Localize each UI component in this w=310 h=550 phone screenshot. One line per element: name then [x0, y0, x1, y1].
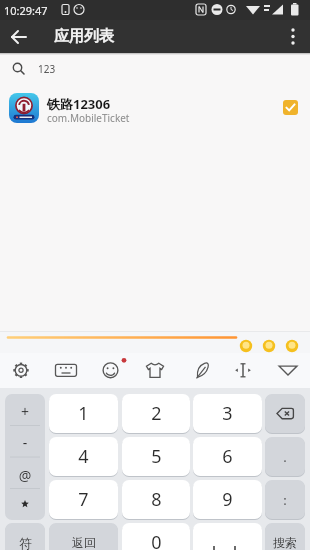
button[interactable]: 5	[122, 437, 190, 476]
staticText: :	[283, 491, 287, 509]
staticText: 搜索	[273, 535, 297, 550]
button[interactable]	[193, 523, 262, 550]
button[interactable]	[283, 100, 298, 115]
staticText: .	[283, 448, 287, 466]
button[interactable]: 8	[122, 480, 190, 519]
button[interactable]: 1	[49, 394, 118, 433]
button[interactable]	[284, 338, 301, 355]
button[interactable]	[282, 23, 304, 51]
staticText: 3	[222, 401, 233, 426]
button[interactable]: .	[265, 437, 305, 476]
button[interactable]: 符	[5, 523, 45, 550]
staticText: 符	[19, 535, 32, 550]
staticText: 9	[222, 487, 233, 512]
button[interactable]: 0	[122, 523, 190, 550]
staticText: 8	[151, 487, 162, 512]
button[interactable]	[183, 355, 217, 386]
button[interactable]: 搜索	[265, 523, 305, 550]
button[interactable]: :	[265, 480, 305, 519]
staticText: com.MobileTicket	[47, 111, 207, 125]
button[interactable]	[0, 88, 310, 128]
button[interactable]	[272, 355, 306, 386]
button[interactable]	[49, 355, 83, 386]
button[interactable]: 6	[193, 437, 262, 476]
button[interactable]: 4	[49, 437, 118, 476]
button[interactable]	[4, 355, 38, 386]
staticText: 123	[38, 62, 98, 76]
button[interactable]	[0, 57, 310, 83]
staticText: 2	[151, 401, 162, 426]
staticText: 1	[78, 401, 89, 426]
staticText: 5	[151, 444, 162, 469]
staticText: 应用列表	[54, 27, 174, 46]
staticText: 返回	[72, 535, 96, 550]
staticText: -	[5, 433, 45, 452]
button[interactable]	[228, 355, 262, 386]
button[interactable]	[5, 394, 45, 520]
staticText: 7	[78, 487, 89, 512]
button[interactable]	[93, 355, 127, 386]
staticText: 4	[78, 444, 89, 469]
button[interactable]: 3	[193, 394, 262, 433]
staticText: 铁路12306	[47, 95, 187, 113]
button[interactable]	[238, 338, 255, 355]
button[interactable]	[265, 394, 305, 433]
button[interactable]	[6, 24, 32, 50]
button[interactable]: 9	[193, 480, 262, 519]
staticText: 0	[151, 530, 162, 550]
staticText: +	[5, 402, 45, 421]
button[interactable]: 返回	[49, 523, 118, 550]
staticText: @	[5, 466, 45, 485]
staticText: 10:29:47	[4, 3, 74, 18]
button[interactable]	[138, 355, 172, 386]
staticText: 6	[222, 444, 233, 469]
button[interactable]	[261, 338, 278, 355]
button[interactable]: 7	[49, 480, 118, 519]
button[interactable]: 2	[122, 394, 190, 433]
